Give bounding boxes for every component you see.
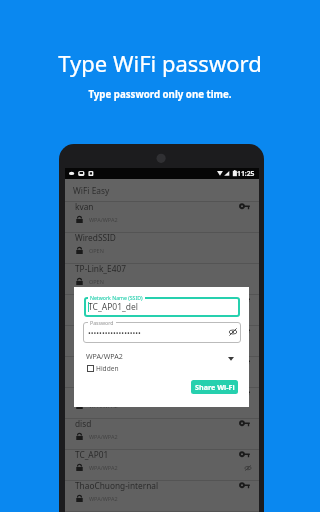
- staticText: ThaoChuong-internal: [75, 480, 159, 491]
- staticText: WPA/WPA2: [89, 495, 118, 502]
- staticText: WiFi Easy: [73, 185, 110, 196]
- staticText: HTC_AP_01: [75, 294, 119, 305]
- other: Saved network: [240, 296, 250, 306]
- staticText: WPA/WPA2: [89, 216, 118, 223]
- staticText: WPA/WPA2: [89, 371, 118, 378]
- button[interactable]: •••••••••••••••••••: [83, 322, 241, 343]
- staticText: Hidden: [96, 364, 119, 373]
- staticText: Type WiFi password: [58, 48, 262, 78]
- staticText: OPEN: [89, 278, 104, 285]
- other: Show password: [229, 328, 237, 336]
- staticText: •••••••••••••••••••: [88, 328, 141, 338]
- other: Hidden password: [244, 464, 252, 472]
- other: Saved network: [240, 327, 250, 337]
- staticText: Password: [90, 319, 114, 326]
- staticText: disd: [75, 418, 92, 429]
- other: Saved network: [240, 451, 250, 461]
- staticText: TP-Link_E407: [75, 263, 126, 274]
- button[interactable]: kvan: [65, 202, 259, 233]
- button[interactable]: disd: [65, 419, 259, 450]
- staticText: Linksys: [75, 356, 104, 367]
- button[interactable]: ThaoChuong-internal: [65, 481, 259, 512]
- staticText: Type password only one time.: [88, 88, 232, 101]
- staticText: OPEN: [89, 247, 104, 254]
- other: Saved network: [240, 420, 250, 430]
- button[interactable]: TC_AP01: [65, 450, 259, 481]
- other: Security type: [228, 357, 234, 363]
- other: Saved network: [240, 203, 250, 213]
- button[interactable]: Share Wi-Fi: [191, 380, 238, 394]
- staticText: Share Wi-Fi: [195, 382, 235, 392]
- staticText: WiredSSID: [75, 232, 116, 243]
- staticText: WPA/WPA2: [89, 309, 118, 316]
- staticText: TC_AP01_del: [88, 301, 138, 313]
- other: Saved network: [240, 389, 250, 399]
- staticText: 11:25: [237, 169, 255, 178]
- button[interactable]: WiredSSID: [65, 233, 259, 264]
- button[interactable]: Linksys: [65, 357, 259, 388]
- staticText: WPA/WPA2: [86, 351, 123, 361]
- button[interactable]: Hidden: [87, 364, 119, 373]
- staticText: WPA/WPA2: [89, 464, 118, 471]
- button[interactable]: TP-Link_E407: [65, 264, 259, 295]
- staticText: WPA/WPA2: [89, 340, 118, 347]
- button[interactable]: TC_AP02: [65, 388, 259, 419]
- other: Saved network: [240, 482, 250, 492]
- staticText: WPA/WPA2: [89, 402, 118, 409]
- other: Saved network: [240, 358, 250, 368]
- button[interactable]: TC_AP01_del: [84, 297, 240, 317]
- staticText: TC_AP01: [75, 449, 109, 460]
- button[interactable]: HTC_AP_01: [65, 295, 259, 326]
- staticText: kvan: [75, 201, 94, 212]
- staticText: Network Name (SSID): [90, 294, 143, 301]
- staticText: Home_5G: [75, 325, 114, 336]
- staticText: WPA/WPA2: [89, 433, 118, 440]
- button[interactable]: Home_5G: [65, 326, 259, 357]
